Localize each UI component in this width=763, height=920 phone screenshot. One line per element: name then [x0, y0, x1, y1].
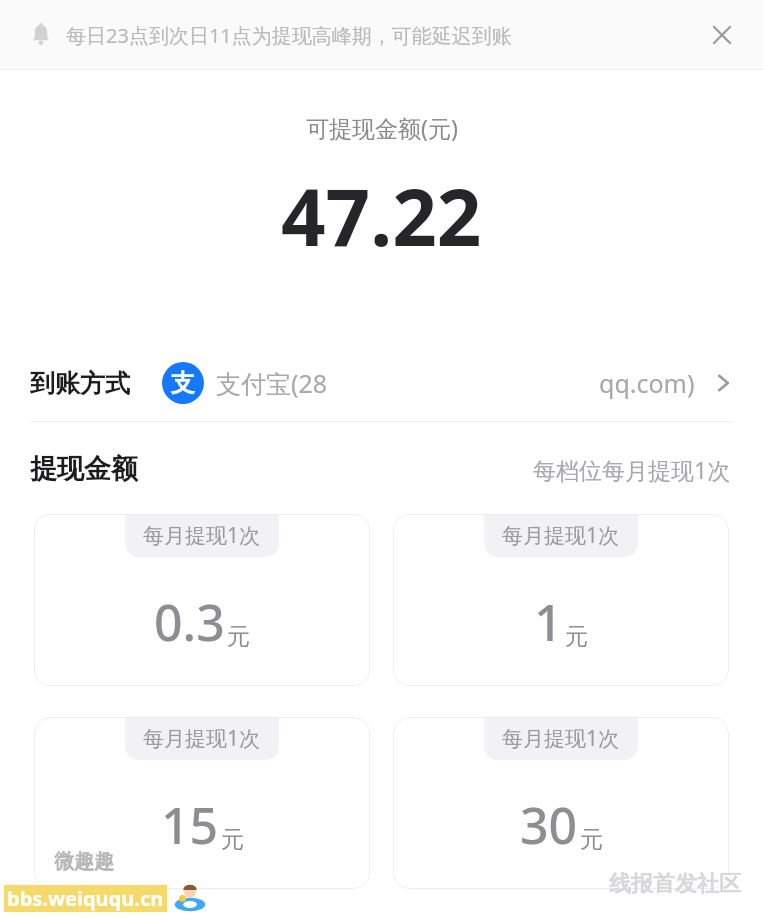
button[interactable]: 每月提现1次 [34, 514, 370, 686]
staticText: 每月提现1次 [502, 724, 620, 753]
staticText: 支付宝(28 [216, 366, 328, 400]
button[interactable]: 每月提现1次 [393, 514, 729, 686]
staticText: 30 [520, 791, 578, 859]
staticText: 到账方式 [30, 368, 130, 399]
staticText: 元 [227, 622, 250, 651]
button[interactable]: 到账方式 [0, 345, 763, 421]
staticText: bbs.weiququ.cn [7, 885, 164, 912]
staticText: 0.3 [154, 588, 225, 656]
staticText: 支 [171, 368, 195, 398]
button[interactable]: 每月提现1次 [34, 717, 370, 889]
staticText: 每日23点到次日11点为提现高峰期，可能延迟到账 [66, 22, 512, 49]
staticText: 可提现金额(元) [306, 112, 458, 143]
staticText: 每月提现1次 [143, 521, 261, 550]
staticText: 线报首发社区 [609, 870, 741, 898]
button[interactable]: Close notice [695, 8, 749, 62]
staticText: 15 [161, 791, 219, 859]
staticText: 提现金额 [30, 452, 138, 486]
staticText: 每月提现1次 [143, 724, 261, 753]
button[interactable]: 每月提现1次 [393, 717, 729, 889]
staticText: 每月提现1次 [502, 521, 620, 550]
staticText: 1 [534, 588, 563, 656]
staticText: 47.22 [281, 163, 482, 269]
staticText: 微趣趣 [54, 849, 114, 874]
staticText: 元 [580, 825, 603, 854]
staticText: qq.com) [599, 366, 695, 400]
staticText: 元 [565, 622, 588, 651]
staticText: 元 [221, 825, 244, 854]
staticText: 每档位每月提现1次 [533, 454, 731, 485]
